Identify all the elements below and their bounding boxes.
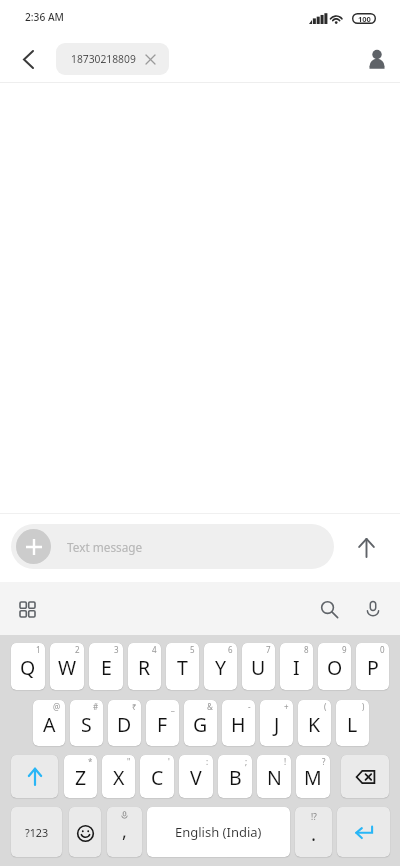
button[interactable]: Shift — [11, 755, 58, 798]
button[interactable]: Q — [11, 643, 45, 690]
button[interactable]: Send — [344, 525, 388, 569]
staticText: 100 — [358, 14, 371, 24]
staticText: 4 — [152, 644, 157, 655]
staticText: _ — [171, 701, 175, 712]
staticText: P — [367, 654, 379, 681]
button[interactable]: Add attachment — [11, 524, 334, 569]
button[interactable]: W — [50, 643, 84, 690]
staticText: F — [157, 711, 168, 738]
staticText: M — [304, 764, 322, 791]
staticText: ; — [245, 756, 248, 767]
button[interactable]: R — [128, 643, 161, 690]
staticText: S — [81, 711, 92, 738]
staticText: !? — [311, 811, 317, 822]
staticText: T — [177, 654, 188, 681]
button[interactable]: B — [218, 755, 252, 798]
button[interactable]: H — [222, 700, 255, 746]
button[interactable]: Z — [64, 755, 97, 798]
button[interactable]: Back — [10, 41, 46, 77]
staticText: W — [58, 654, 77, 681]
staticText: Z — [75, 764, 87, 791]
button[interactable]: , — [107, 807, 142, 857]
staticText: @ — [53, 701, 61, 712]
staticText: E — [101, 654, 112, 681]
button[interactable]: M — [296, 755, 330, 798]
button[interactable]: T — [166, 643, 199, 690]
staticText: : — [206, 756, 209, 767]
button[interactable]: K — [298, 700, 331, 746]
staticText: I — [293, 654, 300, 681]
staticText: * — [88, 756, 93, 767]
button[interactable]: V — [179, 755, 213, 798]
staticText: 2 — [75, 644, 80, 655]
button[interactable]: I — [280, 643, 313, 690]
staticText: 1 — [36, 644, 41, 655]
button[interactable]: . — [295, 807, 332, 857]
staticText: G — [193, 711, 208, 738]
button[interactable]: U — [242, 643, 275, 690]
staticText: N — [267, 764, 282, 791]
button[interactable]: S — [70, 700, 103, 746]
staticText: D — [117, 711, 132, 738]
button[interactable]: ?123 — [11, 807, 62, 857]
staticText: " — [127, 756, 131, 767]
staticText: + — [284, 701, 289, 712]
staticText: English (India) — [175, 823, 262, 841]
staticText: U — [251, 654, 266, 681]
button[interactable]: English (India) — [147, 807, 290, 857]
button[interactable]: Emoji — [69, 807, 101, 857]
button[interactable]: Add attachment — [16, 529, 51, 564]
button[interactable]: Voice input — [356, 592, 390, 626]
button[interactable]: Search — [312, 592, 346, 626]
button[interactable]: O — [318, 643, 351, 690]
staticText: ! — [284, 756, 287, 767]
staticText: 2:36 AM — [25, 10, 64, 24]
staticText: X — [113, 764, 125, 791]
button[interactable]: 18730218809 — [56, 43, 169, 75]
button[interactable]: X — [102, 755, 135, 798]
button[interactable]: C — [140, 755, 174, 798]
staticText: 8 — [304, 644, 309, 655]
staticText: & — [207, 701, 213, 712]
button[interactable]: N — [257, 755, 291, 798]
staticText: H — [231, 711, 246, 738]
button[interactable]: Backspace — [341, 755, 389, 798]
staticText: Y — [215, 654, 227, 681]
button[interactable]: G — [184, 700, 217, 746]
button[interactable]: P — [356, 643, 389, 690]
button[interactable]: E — [89, 643, 123, 690]
staticText: 3 — [114, 644, 119, 655]
staticText: 5 — [190, 644, 195, 655]
staticText: 9 — [342, 644, 347, 655]
staticText: ₹ — [132, 701, 137, 712]
button[interactable]: J — [260, 700, 293, 746]
button[interactable]: D — [108, 700, 141, 746]
staticText: . — [311, 821, 317, 847]
staticText: 0 — [380, 644, 385, 655]
button[interactable]: Apps — [10, 592, 44, 626]
staticText: - — [248, 701, 251, 712]
staticText: 7 — [266, 644, 271, 655]
button[interactable]: L — [336, 700, 369, 746]
button[interactable]: Enter — [337, 807, 390, 857]
button[interactable]: A — [33, 700, 65, 746]
staticText: K — [308, 711, 321, 738]
staticText: , — [122, 819, 127, 844]
staticText: V — [190, 764, 202, 791]
staticText: ? — [322, 756, 326, 767]
staticText: L — [347, 711, 358, 738]
staticText: ' — [168, 756, 170, 767]
staticText: B — [229, 764, 242, 791]
button[interactable]: Contact details — [357, 39, 397, 79]
staticText: ) — [362, 701, 365, 712]
button[interactable]: F — [146, 700, 179, 746]
staticText: O — [327, 654, 343, 681]
staticText: Q — [20, 654, 36, 681]
staticText: ?123 — [25, 825, 49, 840]
staticText: J — [274, 711, 280, 738]
staticText: A — [43, 711, 56, 738]
button[interactable]: Y — [204, 643, 237, 690]
staticText: C — [151, 764, 164, 791]
staticText: 18730218809 — [71, 52, 136, 66]
staticText: R — [138, 654, 151, 681]
